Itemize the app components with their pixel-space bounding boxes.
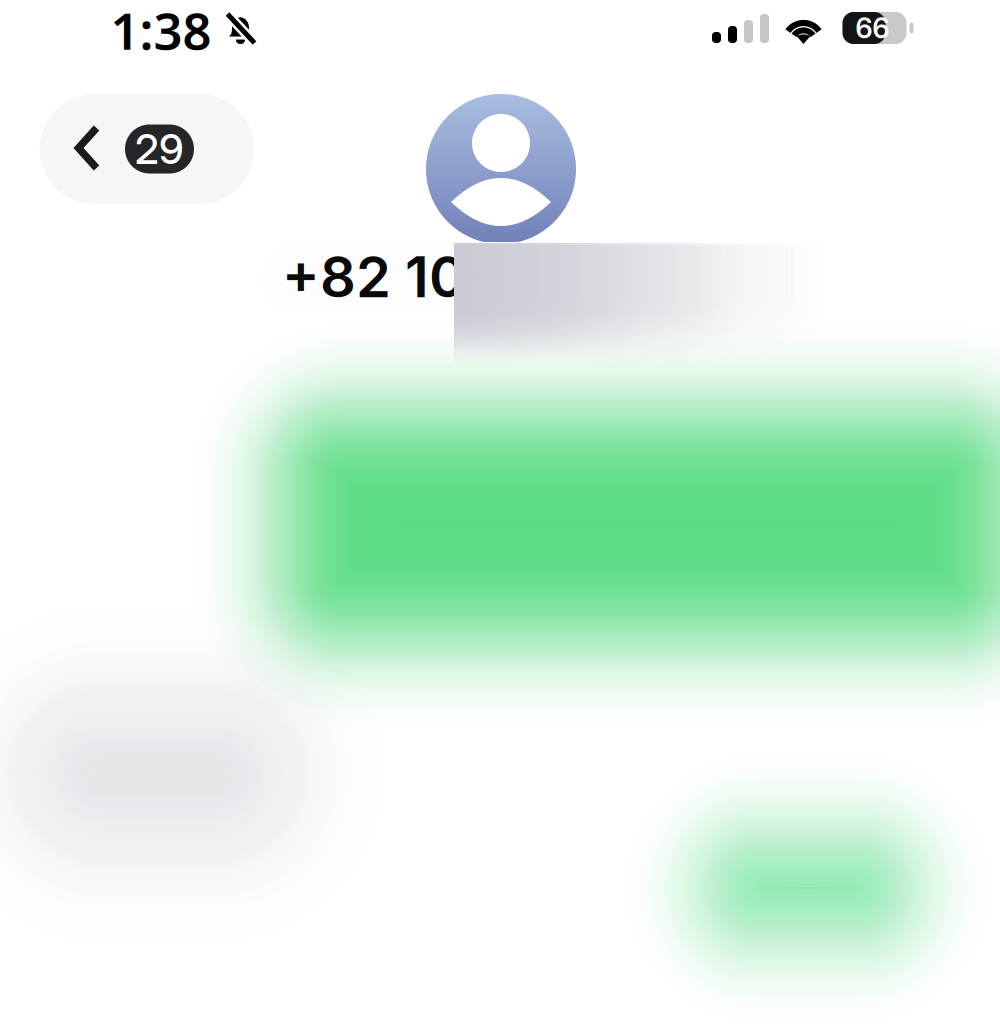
staticText: +82 10-: [282, 243, 492, 311]
staticText: 29: [135, 124, 184, 174]
staticText: 1:38: [110, 0, 211, 64]
button[interactable]: Back, 29 unread: [39, 94, 254, 204]
button[interactable]: Contact +82 10: [262, 242, 732, 312]
staticText: 66: [855, 11, 889, 45]
